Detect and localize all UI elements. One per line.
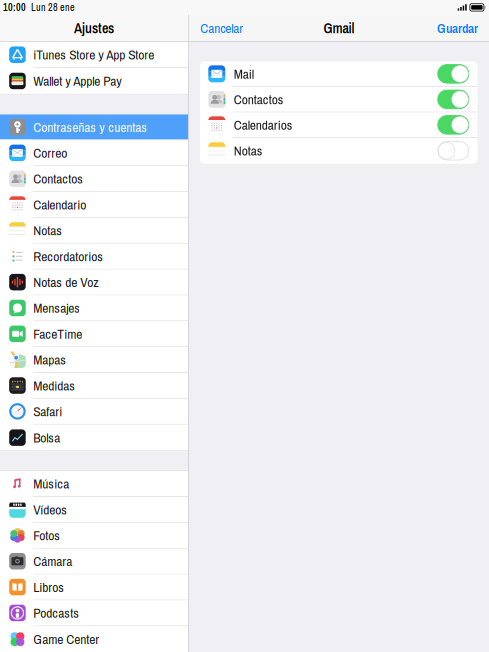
- staticText: Notas: [234, 142, 263, 160]
- button[interactable]: Podcasts: [0, 600, 188, 626]
- button[interactable]: Mensajes: [0, 295, 188, 321]
- button[interactable]: Libros: [0, 575, 188, 600]
- button[interactable]: Calendarios: [200, 112, 477, 137]
- staticText: Fotos: [33, 526, 60, 544]
- staticText: Ajustes: [74, 19, 114, 38]
- staticText: Medidas: [33, 376, 75, 395]
- button[interactable]: Game Center: [0, 626, 188, 652]
- staticText: Gmail: [323, 19, 354, 38]
- staticText: Cámara: [33, 552, 72, 570]
- staticText: Correo: [33, 144, 67, 162]
- staticText: Bolsa: [33, 429, 60, 447]
- staticText: Contraseñas y cuentas: [33, 118, 147, 136]
- button[interactable]: Wallet y Apple Pay: [0, 68, 188, 94]
- button[interactable]: Mail: [200, 61, 477, 86]
- button[interactable]: Bolsa: [0, 425, 188, 451]
- button[interactable]: Guardar: [427, 15, 489, 41]
- staticText: Guardar: [437, 19, 478, 37]
- button[interactable]: Medidas: [0, 373, 188, 399]
- button[interactable]: Correo: [0, 140, 188, 166]
- staticText: iTunes Store y App Store: [33, 46, 154, 64]
- staticText: Lun 28 ene: [31, 1, 75, 14]
- button[interactable]: Contraseñas y cuentas: [0, 114, 188, 140]
- staticText: Recordatorios: [33, 247, 103, 265]
- staticText: Game Center: [33, 630, 99, 648]
- button[interactable]: Contactos: [200, 87, 477, 112]
- staticText: Calendario: [33, 195, 86, 214]
- staticText: Notas: [33, 221, 62, 239]
- button[interactable]: Recordatorios: [0, 244, 188, 270]
- staticText: Calendarios: [234, 116, 293, 134]
- staticText: Podcasts: [33, 604, 79, 622]
- staticText: Safari: [33, 402, 62, 420]
- button[interactable]: Notas: [200, 138, 477, 163]
- staticText: Vídeos: [33, 500, 67, 519]
- button[interactable]: Contactos: [0, 166, 188, 192]
- button[interactable]: Notas: [0, 218, 188, 244]
- button[interactable]: Fotos: [0, 523, 188, 549]
- button[interactable]: Vídeos: [0, 497, 188, 523]
- button[interactable]: FaceTime: [0, 321, 188, 347]
- staticText: Mail: [234, 65, 254, 83]
- staticText: 10:00: [3, 1, 26, 14]
- button[interactable]: Cámara: [0, 549, 188, 575]
- button[interactable]: Música: [0, 471, 188, 497]
- button[interactable]: Mapas: [0, 347, 188, 373]
- staticText: Notas de Voz: [33, 273, 99, 291]
- staticText: Wallet y Apple Pay: [33, 72, 122, 90]
- button[interactable]: Notas de Voz: [0, 270, 188, 295]
- staticText: Libros: [33, 578, 64, 596]
- button[interactable]: Cancelar: [189, 15, 253, 41]
- staticText: Contactos: [33, 170, 83, 188]
- button[interactable]: Safari: [0, 399, 188, 425]
- staticText: Contactos: [234, 90, 284, 108]
- staticText: FaceTime: [33, 325, 82, 343]
- staticText: Música: [33, 475, 69, 493]
- button[interactable]: iTunes Store y App Store: [0, 42, 188, 68]
- staticText: Mapas: [33, 351, 66, 369]
- staticText: Mensajes: [33, 299, 80, 317]
- button[interactable]: Calendario: [0, 192, 188, 218]
- staticText: Cancelar: [200, 19, 243, 37]
